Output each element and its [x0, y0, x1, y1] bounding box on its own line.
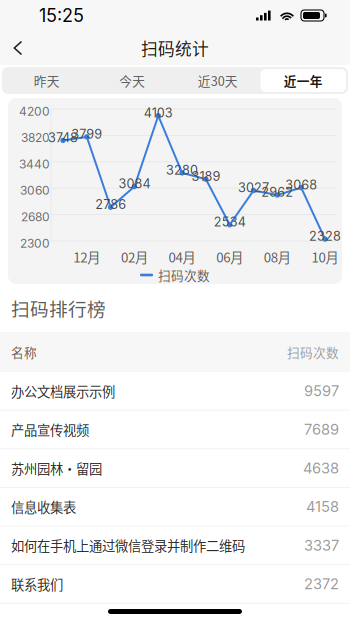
button[interactable]: 昨天 [4, 69, 89, 92]
staticText: 如何在手机上通过微信登录并制作二维码 [11, 536, 245, 555]
staticText: 4200 [19, 104, 50, 118]
staticText: 今天 [119, 71, 145, 90]
button[interactable]: Back [0, 31, 36, 64]
staticText: 扫码次数 [158, 266, 210, 284]
button[interactable]: 近一年 [260, 69, 346, 92]
button[interactable]: 今天 [89, 69, 175, 92]
staticText: 3060 [20, 183, 50, 198]
staticText: 08月 [264, 247, 291, 266]
staticText: 2300 [20, 236, 50, 250]
button[interactable]: 苏州园林·留园 [0, 449, 350, 488]
staticText: 2680 [21, 210, 50, 224]
staticText: 10月 [311, 247, 338, 266]
staticText: 办公文档展示示例 [11, 381, 115, 400]
staticText: 9597 [304, 382, 339, 400]
staticText: 2786 [95, 197, 126, 212]
staticText: 3084 [118, 176, 150, 191]
button[interactable]: 联系我们 [0, 565, 350, 604]
staticText: 4158 [306, 498, 339, 515]
staticText: 信息收集表 [11, 497, 76, 516]
staticText: 联系我们 [11, 574, 63, 593]
staticText: 06月 [216, 247, 243, 266]
staticText: 扫码统计 [141, 36, 209, 60]
staticText: 3068 [285, 177, 317, 192]
staticText: 近30天 [198, 71, 238, 90]
staticText: 扫码次数 [287, 343, 339, 361]
staticText: 3027 [238, 180, 269, 195]
staticText: 2962 [261, 184, 293, 200]
button[interactable]: 产品宣传视频 [0, 411, 350, 449]
staticText: 15:25 [39, 5, 84, 26]
staticText: 扫码排行榜 [11, 294, 106, 321]
staticText: 2372 [304, 575, 339, 593]
staticText: 3748 [48, 130, 78, 145]
staticText: 3337 [304, 536, 339, 554]
staticText: 2534 [214, 214, 246, 229]
staticText: 3440 [19, 157, 50, 171]
staticText: 苏州园林·留园 [11, 458, 102, 478]
staticText: 2328 [309, 229, 341, 244]
staticText: 12月 [73, 247, 100, 266]
staticText: 名称 [11, 343, 37, 361]
staticText: 3189 [191, 169, 220, 184]
staticText: 近一年 [284, 71, 323, 90]
button[interactable]: 近30天 [175, 69, 260, 92]
staticText: 3799 [71, 126, 102, 142]
staticText: 3280 [166, 162, 198, 178]
staticText: 02月 [121, 247, 148, 266]
staticText: 4103 [144, 105, 173, 120]
button[interactable]: 信息收集表 [0, 488, 350, 526]
button[interactable]: 如何在手机上通过微信登录并制作二维码 [0, 526, 350, 565]
button[interactable]: 办公文档展示示例 [0, 372, 350, 411]
staticText: 7689 [304, 421, 339, 438]
staticText: 3820 [21, 130, 50, 145]
staticText: 产品宣传视频 [11, 420, 89, 439]
staticText: 4638 [303, 459, 339, 477]
staticText: 04月 [169, 247, 196, 266]
staticText: 昨天 [34, 71, 60, 90]
